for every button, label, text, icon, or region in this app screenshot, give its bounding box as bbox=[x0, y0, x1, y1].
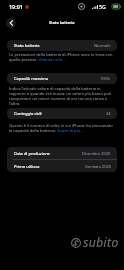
staticText: Stato batteria bbox=[14, 43, 40, 48]
staticText: Questo è il numero di volte in cui iPhon… bbox=[9, 123, 115, 133]
button[interactable]: Primo utilizzo bbox=[7, 160, 117, 172]
staticText: Primo utilizzo bbox=[14, 164, 40, 169]
button[interactable]: Indietro bbox=[6, 18, 16, 28]
staticText: Indica l'attuale valore di capacità dell… bbox=[9, 86, 115, 106]
staticText: subito bbox=[83, 234, 119, 251]
staticText: Stato batteria bbox=[49, 20, 75, 25]
staticText: Le prestazioni della batteria di iPhone … bbox=[9, 52, 115, 62]
button[interactable]: Data di produzione bbox=[7, 147, 117, 159]
staticText: 5G bbox=[99, 3, 106, 10]
staticText: 100% bbox=[100, 76, 111, 81]
staticText: Normale bbox=[94, 43, 111, 48]
staticText: 19:01 bbox=[9, 3, 23, 10]
staticText: Capacità massima bbox=[14, 76, 48, 81]
button[interactable]: Stato batteria bbox=[7, 40, 117, 51]
staticText: Data di produzione bbox=[14, 151, 50, 156]
staticText: Gennaio 2026 bbox=[85, 164, 111, 169]
button[interactable]: Conteggio cicli bbox=[7, 108, 117, 119]
staticText: Dicembre 2020 bbox=[82, 151, 111, 156]
staticText: 34 bbox=[106, 111, 111, 116]
staticText: Conteggio cicli bbox=[14, 111, 42, 116]
button[interactable]: Capacità massima bbox=[7, 73, 117, 84]
